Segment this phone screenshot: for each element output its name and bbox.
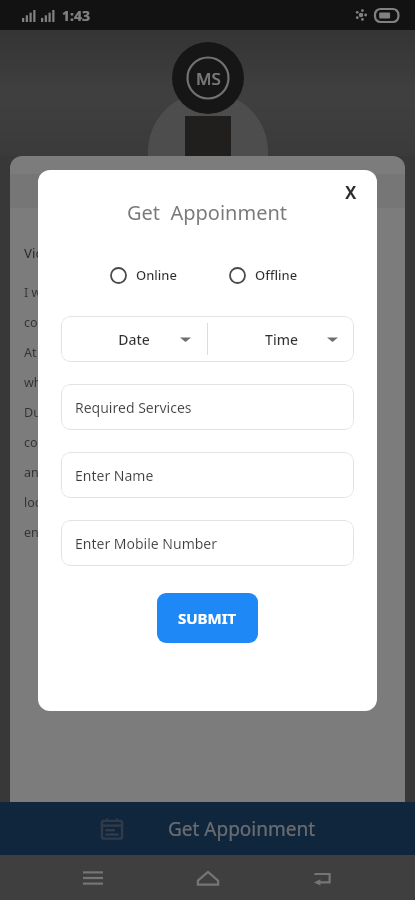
staticText: Time [265, 330, 298, 349]
staticText: local businesses. It wasn't a smooth rid… [24, 494, 291, 511]
button[interactable]: Close [335, 176, 367, 208]
staticText: SUBMIT [178, 608, 237, 628]
button[interactable]: Online [110, 266, 177, 284]
button[interactable]: Recents [71, 856, 115, 900]
staticText: Enter Name [75, 466, 154, 485]
staticText: companies, both local and international. [24, 314, 261, 331]
button[interactable]: Time [208, 316, 354, 362]
button[interactable]: Back [300, 856, 344, 900]
button[interactable]: Home [186, 856, 230, 900]
button[interactable]: Required Services [61, 384, 354, 430]
button[interactable]: Offline [229, 266, 298, 284]
button[interactable]: Get Appoinment [0, 802, 415, 855]
staticText: I worked with several start-ups and [24, 284, 231, 301]
staticText: who taught me a lot about the industry. [24, 374, 258, 391]
staticText: Enter Mobile Number [75, 534, 218, 553]
staticText: Online [136, 266, 177, 284]
button[interactable]: Enter Name [61, 452, 354, 498]
staticText: enjoyed it. So, I asked myself. [24, 524, 196, 541]
staticText: MS [196, 67, 221, 90]
staticText: Get Appoinment [127, 199, 288, 226]
staticText: At times I worked alongside talented peo… [24, 344, 283, 361]
button[interactable]: SUBMIT [157, 593, 258, 643]
staticText: Offline [255, 266, 298, 284]
staticText: Vidhyarthi Mitra [24, 244, 125, 262]
button[interactable]: Date [61, 316, 207, 362]
staticText: During those years I learned how to [24, 404, 235, 421]
staticText: 1:43 [62, 6, 90, 25]
staticText: and deliver websites that actually helpe… [24, 464, 264, 481]
staticText: X [345, 181, 357, 204]
button[interactable]: Enter Mobile Number [61, 520, 354, 566]
staticText: Date [118, 330, 150, 349]
staticText: communicate clearly, plan product launch… [24, 434, 283, 451]
staticText: Required Services [75, 398, 192, 417]
staticText: Get Appoinment [168, 816, 316, 842]
